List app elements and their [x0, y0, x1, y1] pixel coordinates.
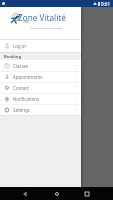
button[interactable]: Recents — [80, 187, 93, 200]
staticText: Zone Vitalité — [18, 12, 66, 23]
staticText: Classes — [13, 63, 29, 69]
staticText: Appointments — [13, 74, 43, 80]
staticText: Booking — [4, 54, 22, 60]
button[interactable]: Settings — [0, 104, 81, 115]
staticText: 9:01 — [101, 1, 111, 7]
button[interactable]: Log in — [0, 40, 81, 52]
staticText: Log in — [13, 43, 26, 49]
button[interactable]: Contact — [0, 82, 81, 93]
staticText: Settings — [13, 107, 30, 113]
button[interactable]: Classes — [0, 60, 81, 71]
staticText: Contact — [13, 85, 29, 91]
button[interactable]: Appointments — [0, 71, 81, 82]
button[interactable]: Back — [18, 187, 31, 200]
staticText: Notifications — [13, 96, 40, 102]
staticText: INSTITUT DE SANTÉ RENOMMÉE — [30, 27, 62, 30]
button[interactable]: Notifications — [0, 93, 81, 104]
staticText: SPA — [23, 20, 29, 24]
button[interactable]: Home — [50, 187, 63, 200]
